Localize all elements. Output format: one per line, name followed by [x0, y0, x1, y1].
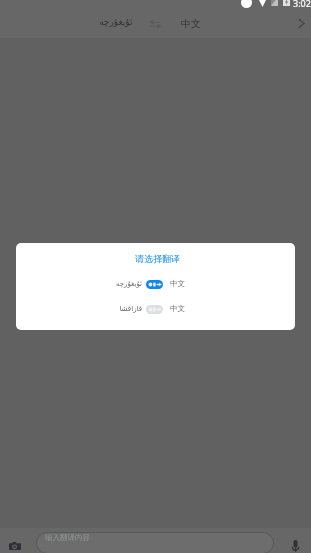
staticText: 3:02	[293, 0, 311, 9]
staticText: 请选择翻译	[135, 253, 180, 264]
button[interactable]: ئۇيغۇرچە	[16, 275, 295, 294]
button[interactable]: 中文	[181, 10, 201, 36]
button[interactable]: ئۇيغۇرچە	[99, 8, 133, 34]
staticText: 中文	[170, 279, 185, 288]
button[interactable]: Camera	[3, 534, 27, 553]
staticText: ئۇيغۇرچە	[99, 17, 133, 27]
staticText: ئۇيغۇرچە	[116, 280, 142, 288]
button[interactable]: More languages	[292, 10, 310, 36]
staticText: 中文	[181, 17, 201, 30]
staticText: قازاقشا	[119, 305, 142, 313]
button[interactable]: قازاقشا	[16, 300, 295, 319]
staticText: 中文	[170, 304, 185, 313]
staticText: 输入翻译内容	[45, 533, 90, 542]
button[interactable]: Voice input	[283, 533, 307, 553]
button[interactable]: 输入翻译内容	[36, 532, 274, 553]
